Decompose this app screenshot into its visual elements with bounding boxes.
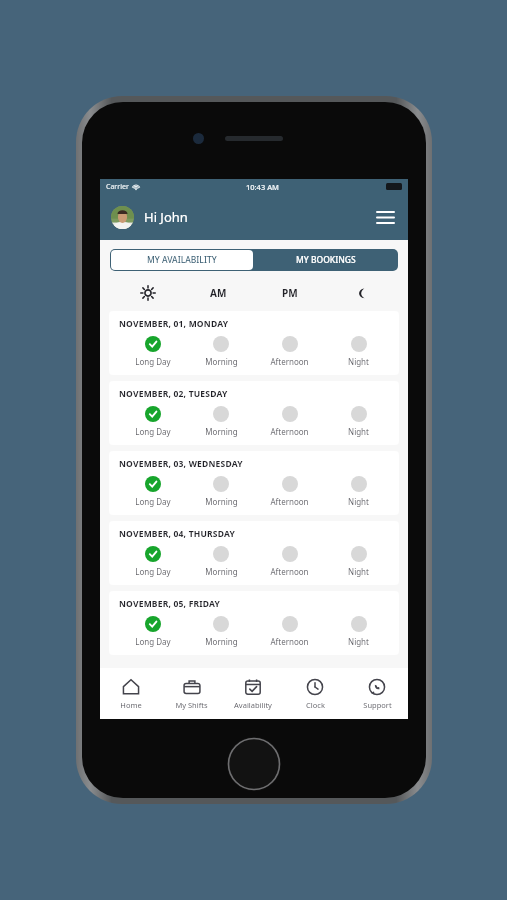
button[interactable]: PM xyxy=(254,280,325,306)
button[interactable]: Morning xyxy=(187,406,255,437)
button[interactable]: NOVEMBER, 02, TUESDAY xyxy=(109,381,399,445)
staticText: NOVEMBER, 04, THURSDAY xyxy=(119,528,236,540)
staticText: My Shifts xyxy=(175,700,208,710)
staticText: Availability xyxy=(234,700,272,710)
staticText: PM xyxy=(282,286,298,300)
staticText: Night xyxy=(348,496,369,507)
staticText: Afternoon xyxy=(270,356,309,367)
staticText: Morning xyxy=(205,356,238,367)
staticText: Night xyxy=(348,566,369,577)
button[interactable]: Night xyxy=(325,280,396,306)
button[interactable]: AM xyxy=(183,280,254,306)
staticText: Clock xyxy=(306,700,325,710)
button[interactable]: Afternoon xyxy=(255,546,324,577)
button[interactable]: Long Day xyxy=(119,476,187,507)
staticText: Afternoon xyxy=(270,496,309,507)
button[interactable]: Long Day xyxy=(119,616,187,647)
button[interactable]: Night xyxy=(324,546,393,577)
button[interactable]: Afternoon xyxy=(255,336,324,367)
button[interactable]: Long Day xyxy=(119,336,187,367)
button[interactable]: Profile xyxy=(111,206,134,229)
staticText: Morning xyxy=(205,636,238,647)
staticText: Long Day xyxy=(135,356,171,367)
staticText: Support xyxy=(363,700,392,710)
button[interactable]: Availability xyxy=(222,668,284,719)
staticText: NOVEMBER, 01, MONDAY xyxy=(119,318,229,330)
staticText: AM xyxy=(210,286,227,300)
staticText: Night xyxy=(348,426,369,437)
staticText: Home xyxy=(120,700,142,710)
staticText: Long Day xyxy=(135,496,171,507)
button[interactable]: NOVEMBER, 04, THURSDAY xyxy=(109,521,399,585)
staticText: Long Day xyxy=(135,636,171,647)
button[interactable]: Long day xyxy=(112,280,183,306)
button[interactable]: Long Day xyxy=(119,406,187,437)
staticText: 10:43 AM xyxy=(246,182,279,192)
button[interactable]: Afternoon xyxy=(255,476,324,507)
staticText: Afternoon xyxy=(270,566,309,577)
staticText: Morning xyxy=(205,566,238,577)
button[interactable]: My Shifts xyxy=(161,668,222,719)
button[interactable]: NOVEMBER, 05, FRIDAY xyxy=(109,591,399,655)
button[interactable]: Afternoon xyxy=(255,406,324,437)
button[interactable]: Night xyxy=(324,476,393,507)
button[interactable]: Afternoon xyxy=(255,616,324,647)
staticText: Hi John xyxy=(144,208,188,226)
staticText: Morning xyxy=(205,496,238,507)
button[interactable]: Home xyxy=(100,668,161,719)
button[interactable]: Support xyxy=(346,668,408,719)
staticText: NOVEMBER, 03, WEDNESDAY xyxy=(119,458,243,470)
staticText: Night xyxy=(348,356,369,367)
button[interactable]: Morning xyxy=(187,336,255,367)
staticText: Night xyxy=(348,636,369,647)
button[interactable]: NOVEMBER, 01, MONDAY xyxy=(109,311,399,375)
button[interactable]: Morning xyxy=(187,546,255,577)
staticText: MY AVAILABILITY xyxy=(147,254,217,266)
staticText: Afternoon xyxy=(270,426,309,437)
staticText: MY BOOKINGS xyxy=(296,254,356,266)
button[interactable]: Morning xyxy=(187,476,255,507)
button[interactable]: Night xyxy=(324,616,393,647)
staticText: NOVEMBER, 02, TUESDAY xyxy=(119,388,228,400)
staticText: Long Day xyxy=(135,566,171,577)
button[interactable]: Night xyxy=(324,336,393,367)
staticText: Morning xyxy=(205,426,238,437)
staticText: NOVEMBER, 05, FRIDAY xyxy=(119,598,221,610)
button[interactable]: Night xyxy=(324,406,393,437)
button[interactable]: Menu xyxy=(373,205,397,229)
button[interactable]: MY BOOKINGS xyxy=(254,249,398,271)
staticText: Afternoon xyxy=(270,636,309,647)
button[interactable]: Long Day xyxy=(119,546,187,577)
button[interactable]: MY AVAILABILITY xyxy=(111,250,253,270)
button[interactable]: NOVEMBER, 03, WEDNESDAY xyxy=(109,451,399,515)
staticText: Long Day xyxy=(135,426,171,437)
staticText: Carrier xyxy=(106,182,129,192)
button[interactable]: Morning xyxy=(187,616,255,647)
button[interactable]: Clock xyxy=(284,668,346,719)
